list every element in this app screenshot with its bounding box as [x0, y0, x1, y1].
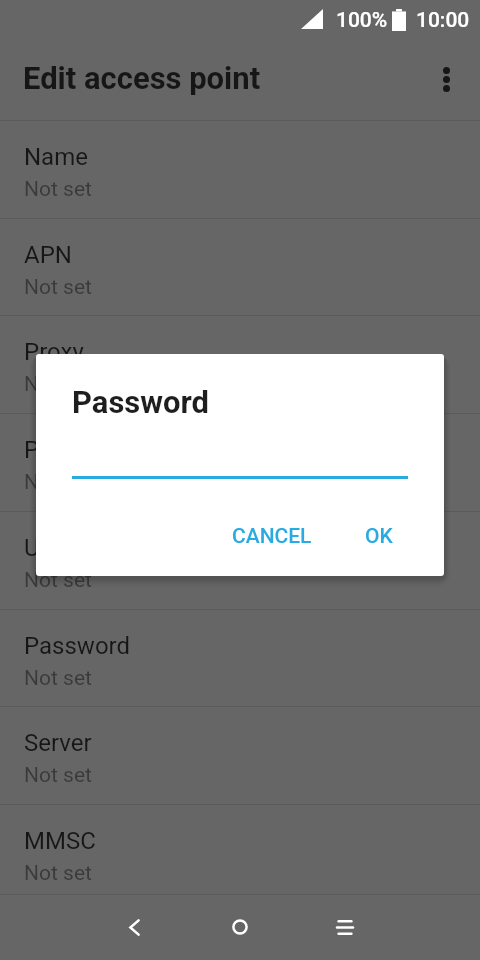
staticText: Not set — [24, 861, 92, 886]
staticText: APN — [24, 241, 72, 269]
staticText: Proxy — [24, 338, 84, 366]
button[interactable]: Name — [0, 121, 480, 218]
button[interactable]: Port — [0, 414, 480, 511]
button[interactable]: CANCEL — [216, 512, 328, 561]
staticText: CANCEL — [232, 524, 312, 549]
staticText: 10:00 — [416, 8, 470, 33]
staticText: Password — [24, 632, 131, 660]
button[interactable]: MMSC — [0, 805, 480, 902]
staticText: Not set — [24, 763, 92, 788]
staticText: Not set — [24, 666, 92, 691]
staticText: 100% — [336, 8, 388, 33]
staticText: Password — [72, 384, 210, 420]
staticText: MMSC — [24, 827, 96, 855]
button[interactable]: Proxy — [0, 316, 480, 413]
staticText: Not set — [24, 568, 92, 593]
button[interactable]: Password — [0, 610, 480, 707]
button[interactable]: More options — [422, 56, 470, 104]
staticText: Username — [24, 534, 133, 562]
staticText: Not set — [24, 372, 92, 397]
button[interactable]: Back — [104, 897, 164, 957]
staticText: Edit access point — [23, 60, 261, 96]
staticText: Not set — [24, 177, 92, 202]
staticText: Not set — [24, 470, 92, 495]
staticText: Name — [24, 143, 88, 171]
staticText: Port — [24, 436, 70, 464]
staticText: Not set — [24, 275, 92, 300]
button[interactable]: Username — [0, 512, 480, 609]
button[interactable]: Recent apps — [315, 897, 375, 957]
button[interactable]: APN — [0, 219, 480, 316]
button[interactable]: Home — [210, 897, 270, 957]
staticText: OK — [365, 524, 393, 549]
staticText: Server — [24, 729, 92, 757]
button[interactable]: OK — [349, 512, 409, 561]
button[interactable]: Server — [0, 707, 480, 804]
